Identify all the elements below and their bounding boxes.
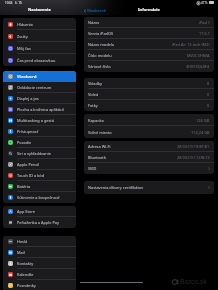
button[interactable]: Späť na Všeobecné [84,8,106,13]
button[interactable]: Sériové číslo [84,61,214,72]
staticText: Hlásenia [17,22,33,27]
staticText: Ovládacie centrum [17,85,52,90]
button[interactable]: Poznámky [3,280,76,290]
button[interactable]: Ovládacie centrum [3,82,76,93]
button[interactable]: Bluetooth [84,152,214,163]
staticText: 0 [207,92,210,97]
button[interactable]: Videá [84,89,214,100]
staticText: Peňaženka a Apple Pay [17,220,60,225]
staticText: 128 GB [196,118,210,123]
staticText: Bluetooth [88,155,107,160]
staticText: Verzia iPadOS [88,31,114,36]
staticText: Všeobecné [17,74,37,79]
staticText: 6. 10. [15,1,23,5]
staticText: Plocha a knižnica aplikácií [17,107,64,112]
staticText: Zvuky [17,34,28,39]
staticText: 0 [207,81,210,86]
button[interactable]: Hlásenia [3,18,76,30]
button[interactable]: Zvuky [3,30,76,42]
staticText: App Store [17,209,35,214]
staticText: Súkromie a bezpečnosť [17,195,60,200]
button[interactable]: Siri a vyhľadávanie [3,148,76,159]
staticText: 28:93:C9:19:8F:B1 [177,144,210,149]
button[interactable]: SEID [84,163,214,174]
staticText: 0 [207,103,210,108]
staticText: Batéria [17,184,31,189]
staticText: 17.6.1 [199,31,210,36]
button[interactable]: Číslo modelu [84,50,214,61]
staticText: Čas pred obrazovkou [17,58,56,63]
staticText: Bazos.sk [180,277,207,286]
staticText: Nastavenia dôvery certifikátov [88,185,144,190]
button[interactable]: Kalendár [3,269,76,280]
staticText: Kalendár [17,272,34,277]
staticText: Kontakty [17,261,34,266]
staticText: Názov [88,20,100,25]
button[interactable]: Pozadie [3,137,76,148]
button[interactable]: Adresa Wi-Fi [84,141,214,152]
staticText: MV2C3HN/A [187,53,210,58]
staticText: iPad [199,20,207,25]
button[interactable]: Verzia iPadOS [84,28,214,39]
staticText: 10:04 [5,1,13,5]
button[interactable]: Prístupnosť [3,126,76,137]
button[interactable]: Kapacita [84,114,214,126]
button[interactable]: Čas pred obrazovkou [3,54,76,66]
button[interactable]: Nastavenia dôvery certifikátov [84,181,214,194]
staticText: Sériové číslo [88,64,111,69]
button[interactable]: Všeobecné [3,71,76,82]
staticText: Skladby [88,81,103,86]
staticText: Videá [88,92,99,97]
staticText: Apple Pencil [17,162,40,167]
staticText: Fotky [88,103,98,108]
staticText: Informácie [138,7,160,12]
staticText: Mail [17,250,25,255]
button[interactable]: Apple Pencil [3,159,76,170]
staticText: 3HXF3QL0F4 [186,64,210,69]
staticText: Displej a jas [17,96,39,101]
staticText: Môj čas [17,46,31,51]
button[interactable]: Multitasking a gestá [3,115,76,126]
staticText: Prístupnosť [17,129,39,134]
staticText: iPad Air 13-inch (M2) [172,42,210,47]
staticText: SEID [88,166,97,171]
button[interactable]: Plocha a knižnica aplikácií [3,104,76,115]
staticText: Pozadie [17,140,32,145]
staticText: Nastavenia [28,7,51,12]
button[interactable]: Kontakty [3,258,76,269]
button[interactable]: App Store [3,206,76,217]
button[interactable]: Heslá [3,236,76,247]
button[interactable]: Voľné miesto [84,126,214,138]
staticText: Všeobecné [87,8,106,13]
staticText: 47 % [201,1,208,5]
staticText: Voľné miesto [88,130,112,135]
button[interactable]: Displej a jas [3,93,76,104]
staticText: Siri a vyhľadávanie [17,151,51,156]
staticText: Kapacita [88,118,104,123]
staticText: Adresa Wi-Fi [88,144,111,149]
staticText: 114,24 GB [191,130,210,135]
button[interactable]: Batéria [3,181,76,192]
staticText: 28:93:C9:11:D8:72 [177,155,210,160]
button[interactable]: Fotky [84,100,214,111]
button[interactable]: Skladby [84,78,214,89]
button[interactable]: Mail [3,247,76,258]
staticText: Heslá [17,239,28,244]
staticText: Poznámky [17,283,36,288]
button[interactable]: Súkromie a bezpečnosť [3,192,76,203]
button[interactable]: Môj čas [3,42,76,54]
staticText: Číslo modelu [88,53,112,58]
staticText: Názov modelu [88,42,115,47]
button[interactable]: Peňaženka a Apple Pay [3,217,76,228]
button[interactable]: Touch ID a kód [3,170,76,181]
button[interactable]: Názov modelu [84,39,214,50]
staticText: Multitasking a gestá [17,118,54,123]
button[interactable]: Názov [84,17,214,28]
staticText: Touch ID a kód [17,173,45,178]
